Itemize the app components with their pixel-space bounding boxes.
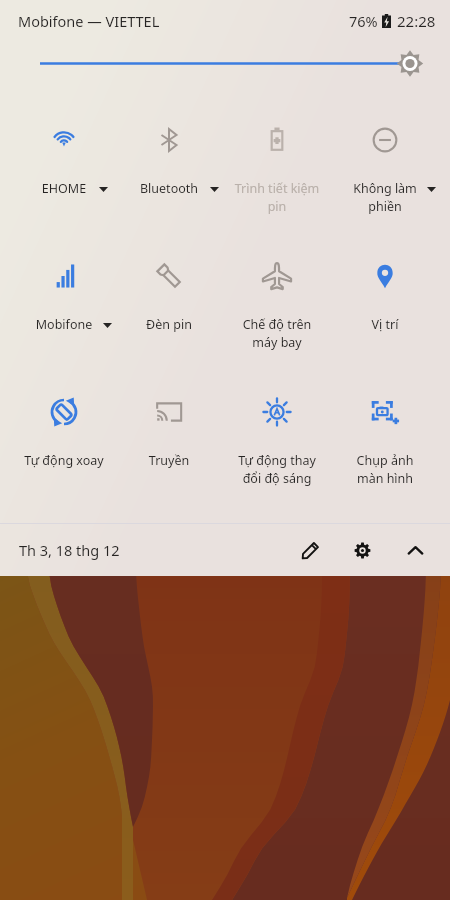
staticText: 22:28 bbox=[397, 11, 436, 31]
button[interactable]: Bluetooth bbox=[117, 106, 221, 206]
button[interactable]: Edit bbox=[290, 530, 330, 570]
staticText: Tự động xoay bbox=[18, 452, 110, 469]
staticText: 76% bbox=[349, 11, 378, 31]
staticText: Đèn pin bbox=[124, 316, 214, 333]
button[interactable]: Tự động thay đổi độ sáng bbox=[225, 378, 329, 478]
button[interactable]: Collapse bbox=[395, 530, 435, 570]
staticText: Mobifone bbox=[31, 316, 97, 333]
staticText: Th 3, 18 thg 12 bbox=[19, 540, 120, 560]
staticText: Truyền bbox=[124, 452, 214, 469]
button[interactable]: Chụp ảnh màn hình bbox=[333, 378, 437, 478]
button[interactable]: Truyền bbox=[117, 378, 221, 478]
button[interactable]: Đèn pin bbox=[117, 242, 221, 342]
staticText: Không làm phiền bbox=[349, 180, 421, 214]
staticText: EHOME bbox=[35, 180, 93, 197]
staticText: Chế độ trên máy bay bbox=[231, 316, 323, 350]
button[interactable]: Chế độ trên máy bay bbox=[225, 242, 329, 342]
staticText: Mobifone — VIETTEL bbox=[18, 11, 160, 31]
button[interactable]: Mobifone bbox=[12, 242, 116, 342]
staticText: Bluetooth bbox=[134, 180, 204, 197]
button[interactable]: Trình tiết kiệm pin bbox=[225, 106, 329, 206]
button[interactable]: Tự động xoay bbox=[12, 378, 116, 478]
button[interactable]: Vị trí bbox=[333, 242, 437, 342]
button[interactable]: EHOME bbox=[12, 106, 116, 206]
button[interactable]: Settings bbox=[342, 530, 382, 570]
staticText: Tự động thay đổi độ sáng bbox=[237, 452, 317, 486]
staticText: Chụp ảnh màn hình bbox=[344, 452, 426, 486]
button[interactable]: Không làm phiền bbox=[333, 106, 437, 206]
staticText: Trình tiết kiệm pin bbox=[232, 180, 322, 214]
staticText: Vị trí bbox=[340, 316, 430, 333]
